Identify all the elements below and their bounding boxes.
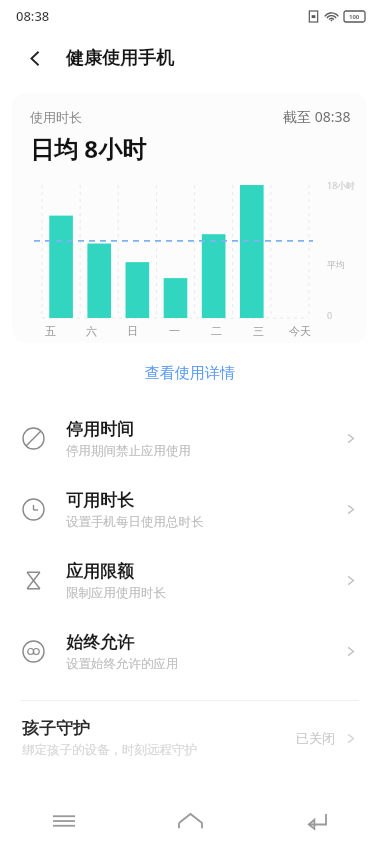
staticText: 设置手机每日使用总时长 xyxy=(66,514,204,530)
staticText: 健康使用手机 xyxy=(66,47,174,70)
staticText: 停用期间禁止应用使用 xyxy=(66,443,191,459)
staticText: 今天 xyxy=(289,324,311,338)
staticText: 查看使用详情 xyxy=(145,364,235,383)
staticText: 设置始终允许的应用 xyxy=(66,656,179,672)
staticText: 始终允许 xyxy=(66,632,134,653)
staticText: 限制应用使用时长 xyxy=(66,585,166,601)
staticText: 截至 08:38 xyxy=(283,107,351,126)
staticText: 18小时 xyxy=(327,179,356,191)
button[interactable]: 最近任务 xyxy=(0,799,127,843)
staticText: 日均 8小时 xyxy=(30,132,146,165)
staticText: 绑定孩子的设备，时刻远程守护 xyxy=(22,742,197,758)
staticText: 一 xyxy=(169,324,180,338)
button[interactable]: 使用时长 xyxy=(12,93,367,343)
button[interactable]: 查看使用详情 xyxy=(0,357,379,389)
staticText: 五 xyxy=(45,324,56,338)
staticText: 已关闭 xyxy=(296,730,335,746)
button[interactable]: 停用时间 xyxy=(0,403,379,474)
button[interactable]: 主屏幕 xyxy=(127,799,253,843)
button[interactable]: 可用时长 xyxy=(0,474,379,545)
staticText: 停用时间 xyxy=(66,419,134,440)
button[interactable]: 返回 xyxy=(18,41,52,75)
button[interactable]: 孩子守护 xyxy=(0,718,379,758)
staticText: 日 xyxy=(127,324,138,338)
staticText: 六 xyxy=(86,324,97,338)
button[interactable]: 返回 xyxy=(253,799,379,843)
staticText: 应用限额 xyxy=(66,561,134,582)
staticText: 可用时长 xyxy=(66,490,134,511)
staticText: 孩子守护 xyxy=(22,718,90,739)
staticText: 100 xyxy=(349,13,360,21)
button[interactable]: 应用限额 xyxy=(0,545,379,616)
staticText: 使用时长 xyxy=(30,109,82,125)
staticText: 二 xyxy=(211,324,222,338)
staticText: 0 xyxy=(327,309,333,321)
staticText: 三 xyxy=(253,324,264,338)
button[interactable]: 始终允许 xyxy=(0,616,379,687)
staticText: 08:38 xyxy=(16,7,50,25)
staticText: 平均 xyxy=(327,259,345,270)
